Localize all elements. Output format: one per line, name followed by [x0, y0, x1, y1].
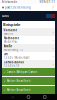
button[interactable]: ✓ — [2, 86, 55, 94]
staticText: ✓ — [3, 70, 5, 73]
staticText: ◁ — [11, 95, 13, 98]
staticText: Beispiele — [3, 22, 20, 27]
button[interactable]: ✓ — [2, 68, 55, 76]
staticText: ⋮ — [51, 5, 55, 10]
staticText: Vorname — [3, 28, 17, 32]
button[interactable]: Vorname — [2, 28, 55, 36]
staticText: ✓ — [3, 88, 5, 91]
staticText: › — [52, 37, 53, 43]
staticText: Weiter Einzelheit — [6, 79, 30, 83]
staticText: paket.de/sendung — [5, 6, 31, 9]
button[interactable]: Home — [24, 94, 32, 100]
button[interactable]: ✓ — [2, 77, 55, 85]
staticText: 12345678 — [3, 64, 19, 67]
staticText: Martina — [3, 32, 12, 35]
button[interactable]: Recents — [41, 94, 49, 100]
staticText: › — [52, 45, 53, 51]
staticText: › — [52, 53, 53, 59]
staticText: Musterweg 12 — [3, 48, 23, 51]
staticText: Carton-Webpart Carton — [6, 70, 37, 74]
button[interactable]: Back — [8, 94, 16, 100]
staticText: ✓ — [3, 79, 5, 82]
staticText: Telekom.de — [1, 0, 17, 4]
staticText: Ort — [3, 52, 7, 56]
staticText: LOGO — [2, 14, 9, 18]
staticText: 90% 07:11 — [39, 0, 55, 4]
staticText: Carton-Bonus — [3, 60, 23, 64]
staticText: 12345 Musterstadt — [3, 56, 29, 59]
staticText: Weiter Einzelheit — [6, 88, 30, 92]
button[interactable]: Straße — [2, 44, 55, 52]
staticText: › — [52, 29, 53, 35]
staticText: › — [52, 61, 53, 67]
button[interactable]: Carton-Bonus — [2, 60, 55, 68]
staticText: Nachname — [3, 36, 19, 40]
button[interactable]: Nachname — [2, 36, 55, 44]
staticText: Musterfrau — [3, 40, 17, 43]
button[interactable]: Ort — [2, 52, 55, 60]
staticText: Straße — [3, 44, 12, 48]
